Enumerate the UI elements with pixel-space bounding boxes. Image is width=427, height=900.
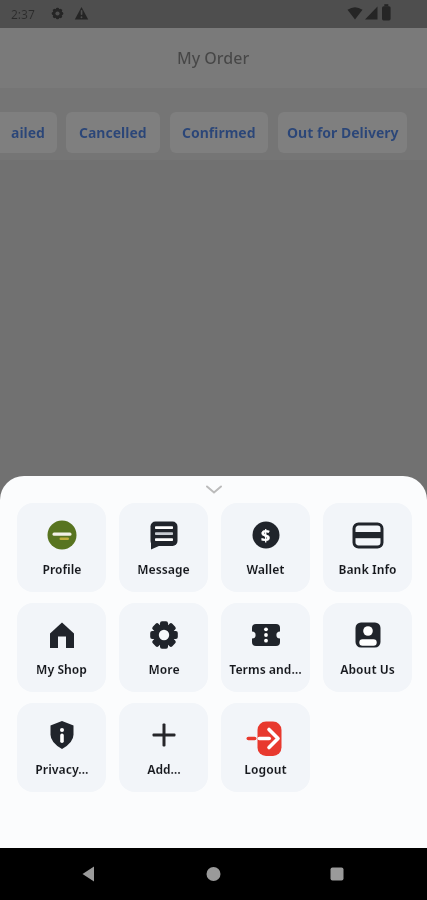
- staticText: Bank Info: [338, 561, 397, 577]
- staticText: Cancelled: [79, 123, 147, 142]
- button[interactable]: Out for Delivery: [278, 112, 407, 153]
- staticText: More: [148, 661, 180, 677]
- staticText: ailed: [11, 123, 45, 142]
- staticText: Profile: [42, 561, 82, 577]
- staticText: Terms and…: [229, 661, 302, 677]
- button[interactable]: Bank Info: [323, 503, 412, 592]
- staticText: My Order: [177, 47, 250, 69]
- staticText: Logout: [244, 761, 287, 777]
- staticText: Wallet: [246, 561, 285, 577]
- staticText: My Shop: [36, 661, 87, 677]
- button[interactable]: Terms and…: [221, 603, 310, 692]
- staticText: $: [261, 524, 271, 546]
- button[interactable]: Add…: [119, 703, 208, 792]
- button[interactable]: Message: [119, 503, 208, 592]
- button[interactable]: ailed: [0, 112, 57, 153]
- button[interactable]: Confirmed: [170, 112, 268, 153]
- button[interactable]: Privacy…: [17, 703, 106, 792]
- staticText: Message: [137, 561, 190, 577]
- button[interactable]: More: [119, 603, 208, 692]
- button[interactable]: About Us: [323, 603, 412, 692]
- button[interactable]: Profile: [17, 503, 106, 592]
- staticText: Confirmed: [182, 123, 256, 142]
- staticText: About Us: [340, 661, 395, 677]
- staticText: Add…: [147, 761, 181, 777]
- button[interactable]: My Shop: [17, 603, 106, 692]
- button[interactable]: $: [221, 503, 310, 592]
- staticText: Privacy…: [35, 761, 89, 777]
- staticText: Out for Delivery: [287, 123, 399, 142]
- staticText: 2:37: [11, 6, 35, 22]
- button[interactable]: Logout: [221, 703, 310, 792]
- button[interactable]: Cancelled: [66, 112, 160, 153]
